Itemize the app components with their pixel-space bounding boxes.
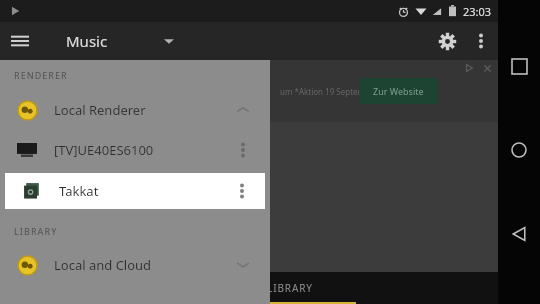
staticText: 23:03 bbox=[463, 4, 492, 19]
staticText: Takkat bbox=[59, 182, 99, 200]
button[interactable]: Close ad bbox=[481, 62, 494, 75]
staticText: [TV]UE40ES6100 bbox=[54, 141, 154, 159]
staticText: Zur Website bbox=[373, 85, 424, 97]
button[interactable]: LIBRARY bbox=[224, 272, 356, 304]
button[interactable]: Local and Cloud bbox=[0, 245, 270, 285]
staticText: um *Aktion 19 September! bbox=[280, 86, 380, 97]
button[interactable]: Takkat bbox=[5, 173, 265, 209]
button[interactable]: Local Renderer bbox=[0, 90, 270, 130]
staticText: LIBRARY bbox=[267, 281, 313, 295]
button[interactable]: Change library source bbox=[158, 30, 180, 52]
button[interactable]: [TV]UE40ES6100 bbox=[0, 130, 270, 170]
staticText: Local Renderer bbox=[54, 101, 146, 119]
button[interactable]: Zur Website bbox=[359, 78, 437, 104]
button[interactable]: Open navigation drawer bbox=[0, 22, 40, 60]
button[interactable]: Play ad bbox=[462, 61, 476, 75]
button[interactable]: Recent apps bbox=[501, 48, 537, 84]
staticText: Local and Cloud bbox=[54, 256, 152, 274]
staticText: RENDERER bbox=[14, 69, 68, 81]
button[interactable]: Settings bbox=[428, 22, 466, 60]
button[interactable]: More options bbox=[466, 26, 496, 56]
button[interactable]: Back bbox=[501, 216, 537, 252]
button[interactable]: More options for Takkat bbox=[228, 177, 256, 205]
staticText: Music bbox=[66, 31, 108, 51]
staticText: LIBRARY bbox=[14, 225, 58, 237]
button[interactable]: Home bbox=[501, 132, 537, 168]
